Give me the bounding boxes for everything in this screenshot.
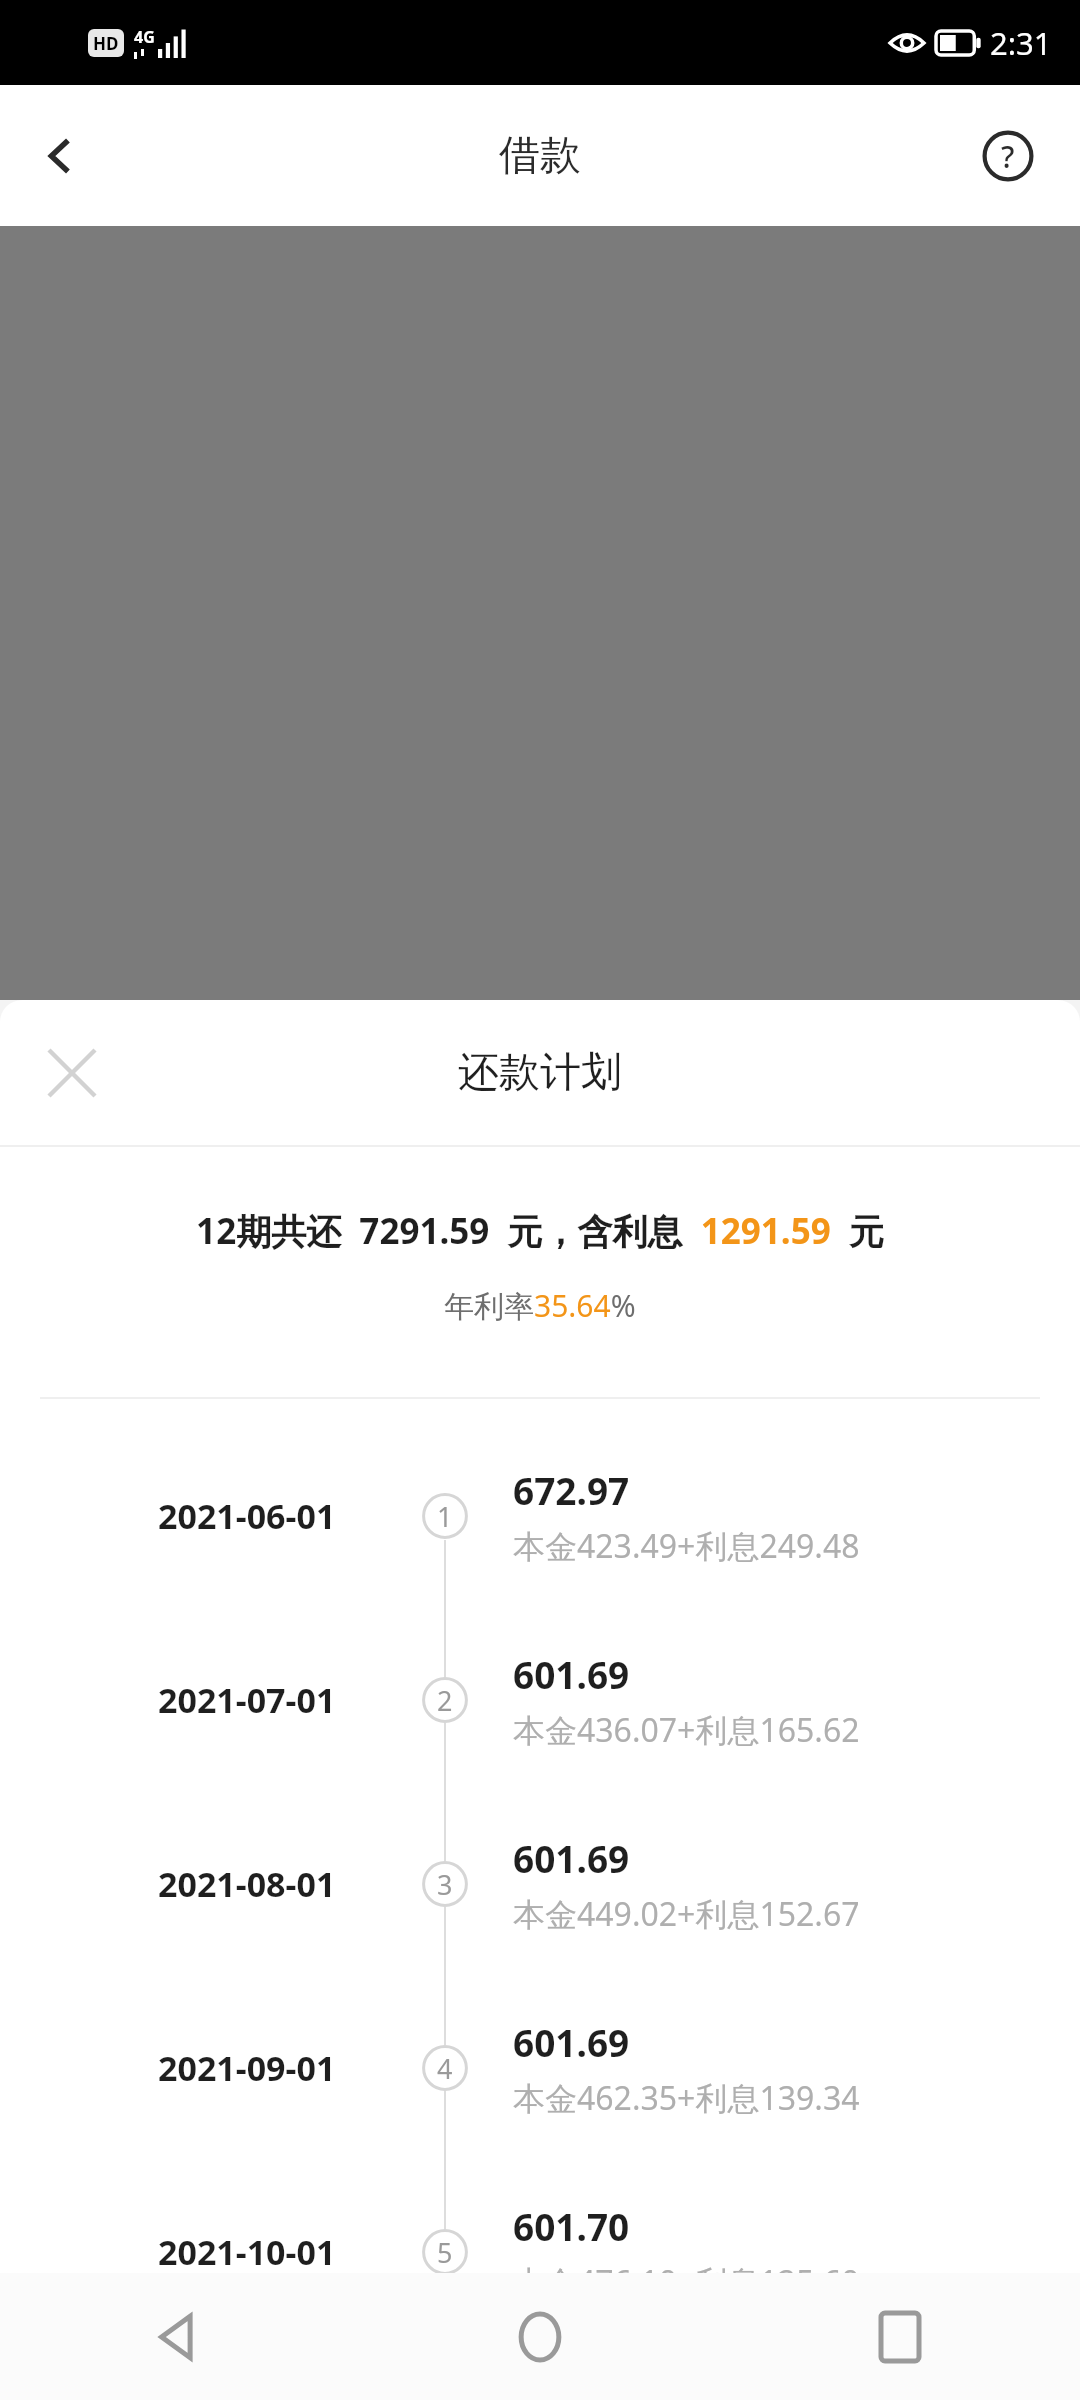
button[interactable]: 2021-07-01	[0, 1608, 1080, 1792]
staticText: 601.69	[513, 2017, 630, 2067]
staticText: 2021-10-01	[158, 2229, 336, 2275]
staticText: 本金476.10+利息125.60	[513, 2260, 860, 2304]
staticText: 601.69	[513, 1649, 630, 1699]
button[interactable]: Recents	[720, 2273, 1080, 2400]
staticText: 等额本息	[850, 985, 994, 1030]
staticText: 12期共还 7291.59 元，含利息 1291.59 元	[196, 1207, 884, 1255]
staticText: 本金436.07+利息165.62	[513, 1708, 860, 1752]
button[interactable]: 2021-10-01	[0, 2160, 1080, 2344]
staticText: 601.70	[513, 2201, 630, 2251]
staticText: 672.97	[513, 1465, 630, 1515]
button[interactable]: 2021-08-01	[0, 1792, 1080, 1976]
staticText: 2:31	[990, 22, 1052, 64]
button[interactable]: Back	[0, 2273, 360, 2400]
staticText: ?	[1001, 136, 1015, 177]
staticText: 2	[437, 1682, 453, 1719]
staticText: 601.69	[513, 1833, 630, 1883]
button[interactable]: Back	[18, 114, 102, 198]
button[interactable]: Home	[360, 2273, 720, 2400]
staticText: 年利率35.64%	[444, 1285, 636, 1326]
staticText: 5	[437, 2234, 453, 2271]
button[interactable]: 2021-06-01	[0, 1424, 1080, 1608]
staticText: 4	[437, 2050, 453, 2087]
staticText: 本金423.49+利息249.48	[513, 1524, 860, 1568]
staticText: HD	[93, 32, 119, 55]
staticText: 4G	[134, 26, 155, 48]
staticText: 2021-07-01	[158, 1677, 336, 1723]
staticText: 2021-09-01	[158, 2045, 336, 2091]
button[interactable]: Close	[22, 1023, 122, 1123]
staticText: 2021-08-01	[158, 1861, 336, 1907]
button[interactable]: Help	[971, 119, 1045, 193]
staticText: 3	[437, 1866, 453, 1903]
staticText: 2021-06-01	[158, 1493, 336, 1539]
staticText: 1	[437, 1498, 453, 1535]
staticText: 借款	[499, 130, 581, 182]
staticText: 本金449.02+利息152.67	[513, 1892, 860, 1936]
staticText: 本金462.35+利息139.34	[513, 2076, 860, 2120]
button[interactable]: 2021-09-01	[0, 1976, 1080, 2160]
staticText: 还款计划	[458, 1047, 622, 1099]
